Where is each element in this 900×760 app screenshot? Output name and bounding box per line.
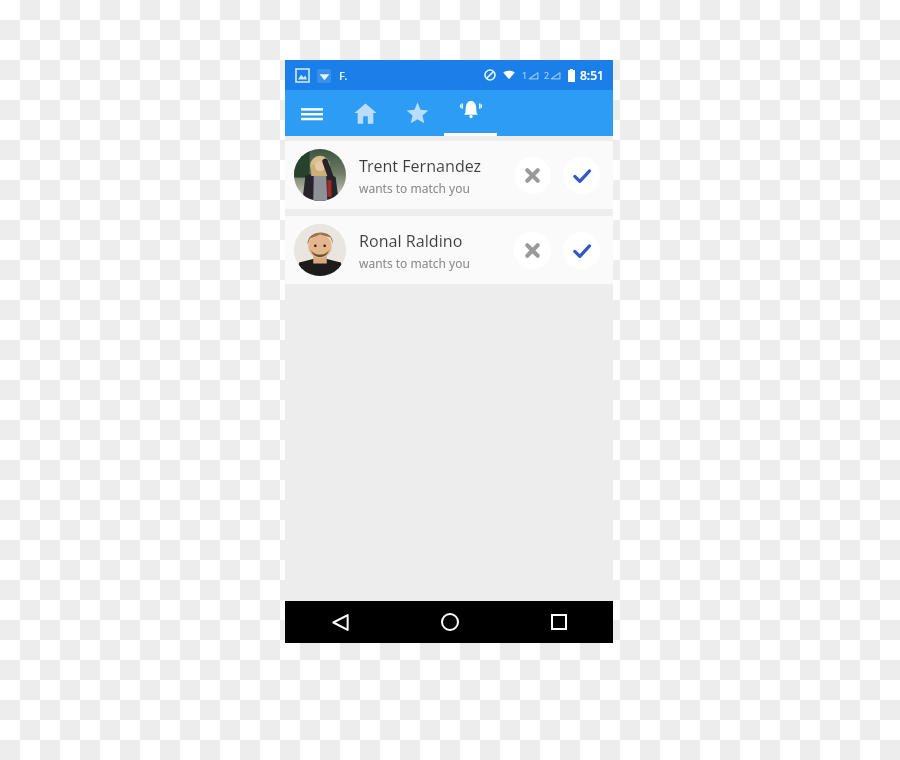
button[interactable]: Trent Fernandez xyxy=(285,141,613,209)
button[interactable]: Decline xyxy=(514,157,551,194)
button[interactable]: Notifications xyxy=(444,90,497,136)
button[interactable]: Accept xyxy=(563,157,600,194)
staticText: 8:51 xyxy=(580,67,604,83)
staticText: Trent Fernandez xyxy=(359,155,482,177)
button[interactable]: Favorites xyxy=(391,90,444,136)
staticText: F. xyxy=(339,68,348,83)
button[interactable]: Decline xyxy=(514,232,551,269)
button[interactable]: Home xyxy=(395,601,504,643)
staticText: wants to match you xyxy=(359,180,470,196)
button[interactable]: Menu xyxy=(285,90,339,136)
staticText: Ronal Raldino xyxy=(359,230,463,252)
button[interactable]: Back xyxy=(285,601,395,643)
button[interactable]: Ronal Raldino xyxy=(285,216,613,284)
staticText: 2 xyxy=(544,69,550,81)
button[interactable]: Accept xyxy=(563,232,600,269)
staticText: wants to match you xyxy=(359,255,470,271)
staticText: 1 xyxy=(522,69,528,81)
button[interactable]: Recents xyxy=(504,601,613,643)
button[interactable]: Home xyxy=(339,90,391,136)
